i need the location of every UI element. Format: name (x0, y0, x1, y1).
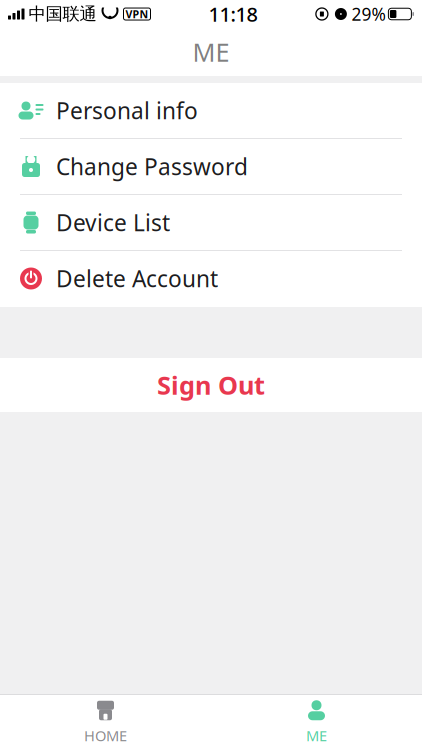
staticText: HOME (84, 726, 127, 745)
button[interactable]: Change Password (0, 139, 422, 195)
staticText: ME (306, 726, 327, 745)
staticText: VPN (125, 7, 148, 21)
staticText: ME (192, 35, 229, 69)
staticText: Change Password (56, 151, 248, 181)
button[interactable]: ME (211, 695, 422, 750)
staticText: Sign Out (157, 368, 265, 402)
staticText: 11:18 (208, 1, 257, 27)
button[interactable]: Device List (0, 195, 422, 251)
staticText: Delete Account (56, 263, 218, 293)
button[interactable]: Sign Out (0, 358, 422, 412)
staticText: Personal info (56, 95, 198, 125)
staticText: Device List (56, 207, 170, 237)
button[interactable]: Delete Account (0, 251, 422, 307)
staticText: 中国联通 (28, 3, 96, 25)
staticText: 29% (351, 2, 385, 25)
button[interactable]: HOME (0, 695, 211, 750)
button[interactable]: Personal info (0, 83, 422, 139)
